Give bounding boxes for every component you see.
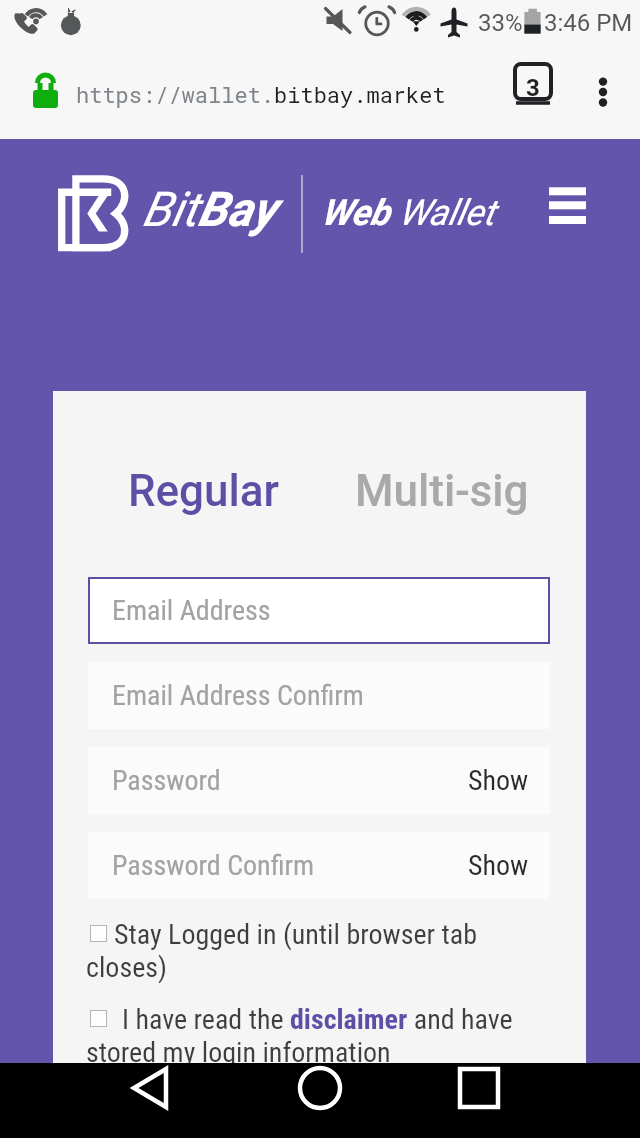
button[interactable]: Email Address Confirm xyxy=(88,662,550,729)
button[interactable]: Password xyxy=(88,747,550,814)
staticText: https://wallet.bitbay.market xyxy=(76,80,446,109)
button[interactable]: Password Confirm xyxy=(88,832,550,899)
staticText: Regular xyxy=(128,465,280,517)
button[interactable]: Regular xyxy=(128,465,280,517)
button[interactable]: Recent apps xyxy=(440,1063,520,1138)
staticText: Multi-sig xyxy=(355,465,529,517)
button[interactable]: Multi-sig xyxy=(355,465,529,517)
button[interactable]: Tabs xyxy=(505,62,561,118)
staticText: Web Wallet xyxy=(321,192,495,234)
staticText: stored my login information xyxy=(86,1036,391,1069)
staticText: closes) xyxy=(86,951,168,984)
staticText: 3 xyxy=(526,74,540,102)
staticText: Password Confirm xyxy=(112,849,314,882)
button[interactable]: More options xyxy=(582,60,624,122)
staticText: 33% xyxy=(478,9,523,37)
button[interactable]: Email Address xyxy=(88,577,550,644)
staticText: Password xyxy=(112,764,221,797)
staticText: I have read the disclaimer and have xyxy=(122,1003,513,1036)
staticText: Email Address xyxy=(112,594,271,627)
button[interactable]: Menu xyxy=(543,179,593,227)
button[interactable]: Back xyxy=(120,1063,200,1138)
button[interactable]: Home xyxy=(280,1063,360,1138)
staticText: 3:46 PM xyxy=(544,9,633,37)
staticText: Stay Logged in (until browser tab xyxy=(114,918,478,951)
staticText: Show xyxy=(468,849,529,882)
button[interactable]: I have read the disclaimer and have xyxy=(86,1003,546,1077)
staticText: BitBay xyxy=(142,181,276,237)
staticText: Show xyxy=(468,764,529,797)
button[interactable]: Stay Logged in (until browser tab xyxy=(86,918,546,992)
staticText: Email Address Confirm xyxy=(112,679,364,712)
